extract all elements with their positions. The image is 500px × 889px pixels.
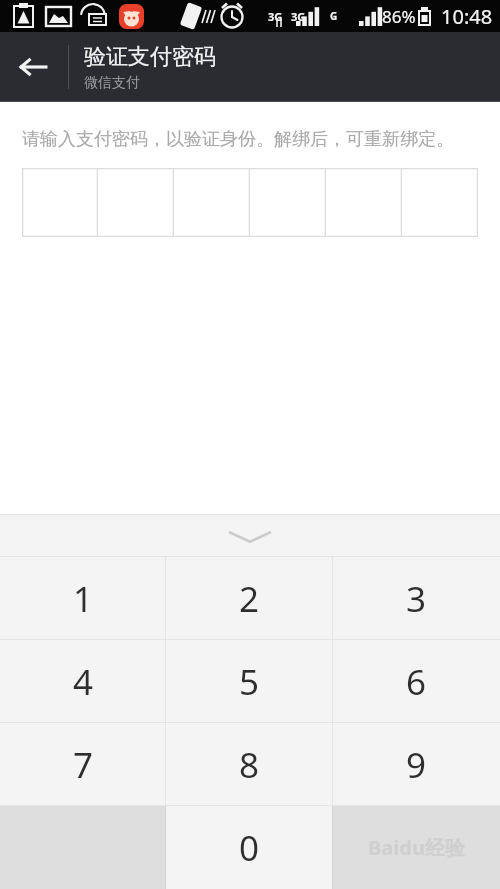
staticText: 0 [239,824,260,872]
button[interactable] [22,168,98,237]
button[interactable]: Back [0,32,66,102]
staticText: 请输入支付密码，以验证身份。解绑后，可重新绑定。 [22,128,478,151]
button[interactable]: 6 [333,640,500,723]
staticText: 5 [239,658,260,706]
button[interactable]: Hide keyboard [0,514,500,557]
staticText: 3G [291,9,306,24]
button[interactable]: 7 [0,723,166,806]
button[interactable]: 8 [166,723,333,806]
button[interactable] [174,168,250,237]
button[interactable]: 4 [0,640,166,723]
staticText: 7 [73,741,94,789]
staticText: 微信支付 [84,74,140,92]
staticText: 3 [406,575,427,623]
staticText: 8 [239,741,260,789]
button[interactable] [326,168,402,237]
button[interactable]: 5 [166,640,333,723]
staticText: 86% [382,5,416,28]
staticText: 9 [406,741,427,789]
button[interactable]: 0 [166,806,333,889]
button[interactable]: 2 [166,557,333,640]
staticText: Baidu经验 [368,834,465,861]
staticText: 2 [239,575,260,623]
button[interactable]: Delete [333,806,500,889]
staticText: 验证支付密码 [84,43,216,71]
staticText: G [330,9,338,23]
button[interactable]: 3 [333,557,500,640]
staticText: 4 [73,658,94,706]
staticText: 1 [73,575,94,623]
button[interactable] [98,168,174,237]
button[interactable] [250,168,326,237]
staticText: 10:48 [441,3,493,30]
button[interactable]: 9 [333,723,500,806]
staticText: 6 [406,658,427,706]
button[interactable]: 1 [0,557,166,640]
staticText: 3G [268,9,283,24]
button[interactable] [402,168,478,237]
